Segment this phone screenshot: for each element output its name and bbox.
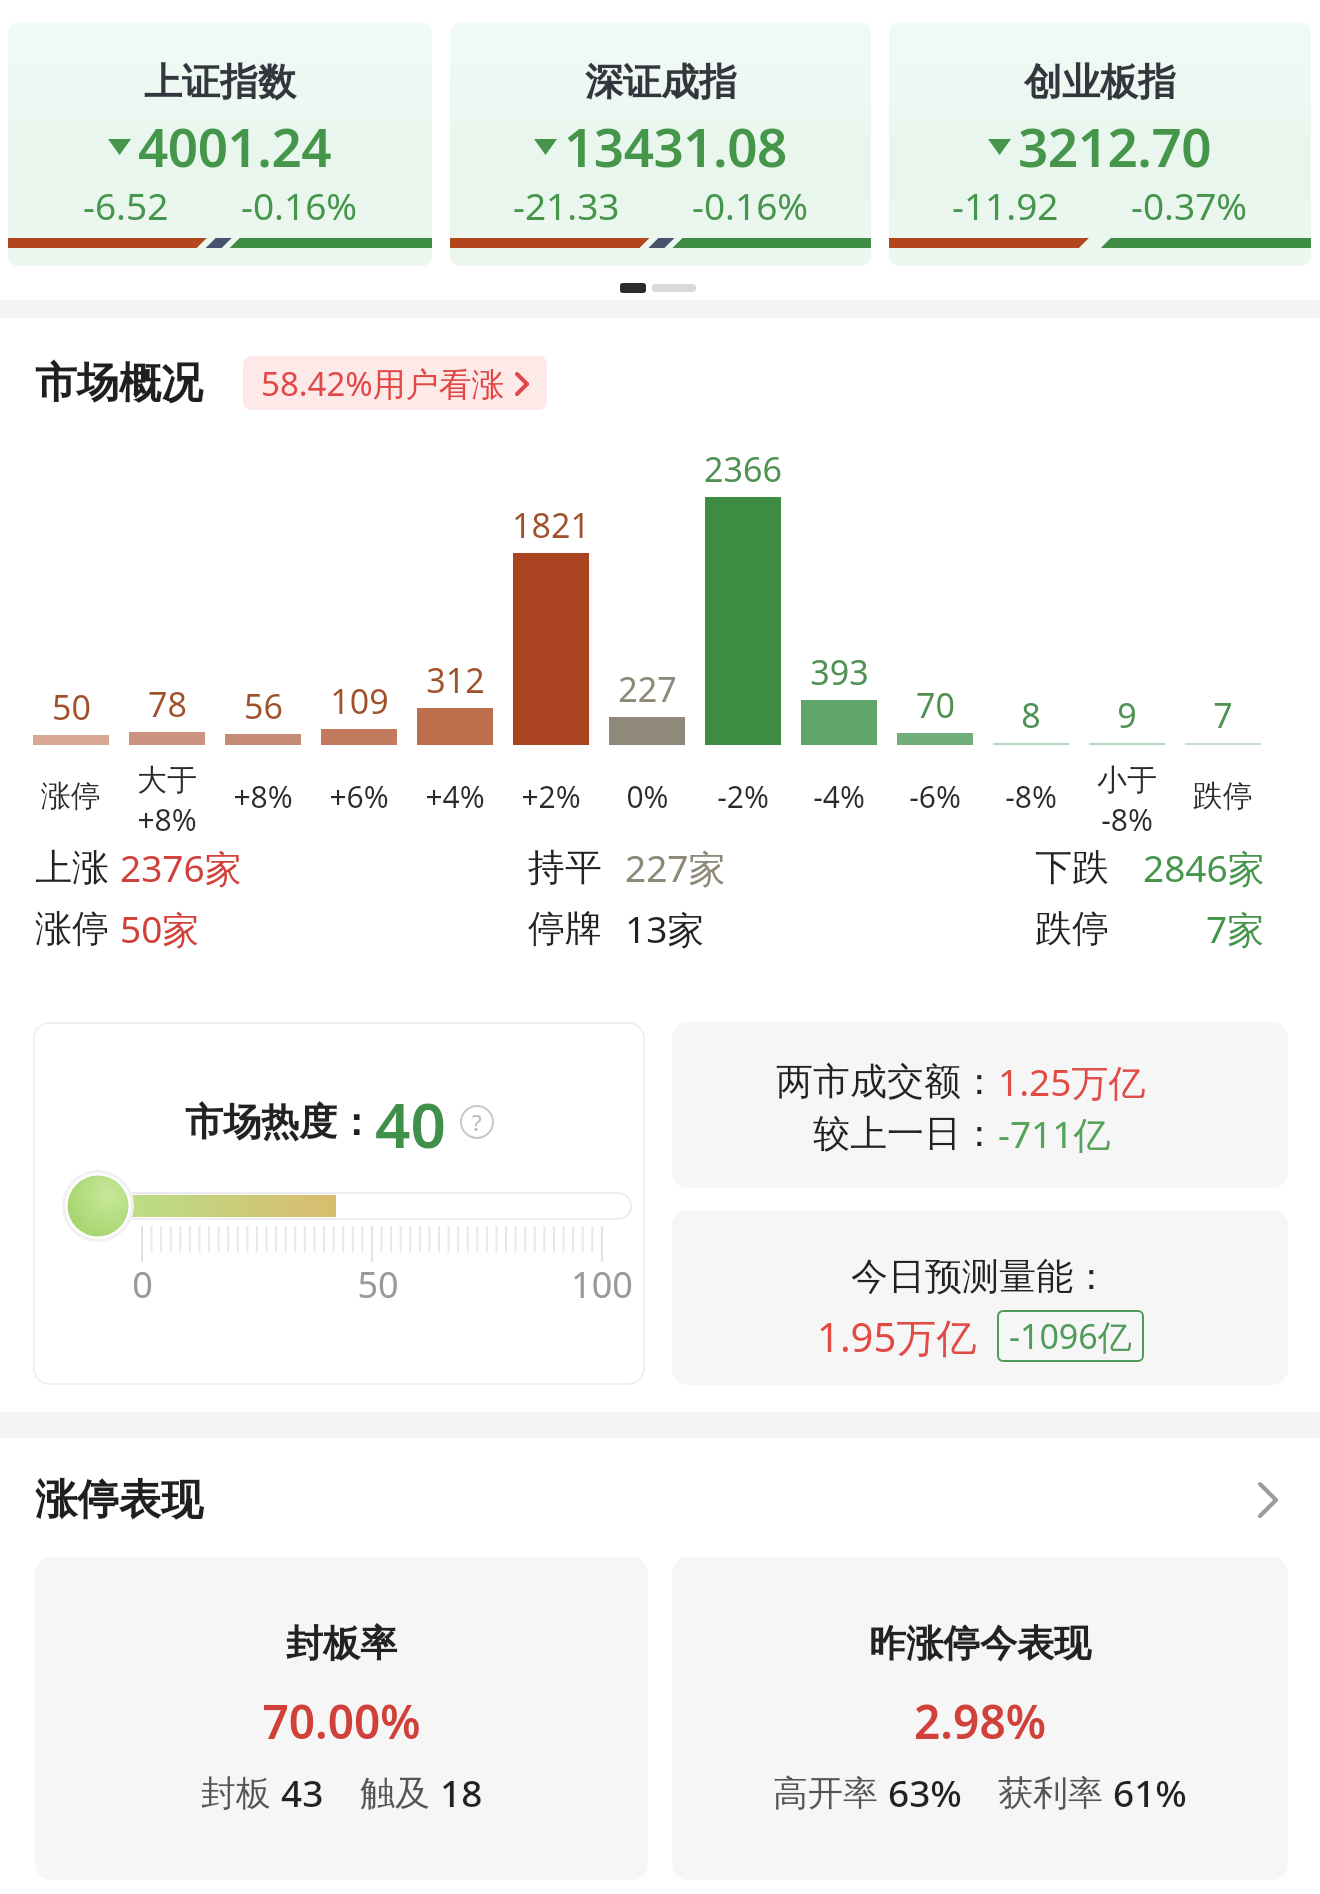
staticText: 创业板指 bbox=[1024, 58, 1176, 106]
staticText: 78 bbox=[148, 681, 187, 727]
staticText: 2846家 bbox=[1143, 842, 1265, 893]
staticText: 13431.08 bbox=[564, 110, 787, 182]
staticText: 18 bbox=[440, 1767, 483, 1817]
staticText: -0.37% bbox=[1131, 180, 1248, 230]
staticText: 触及 bbox=[360, 1768, 440, 1816]
staticText: 3212.70 bbox=[1018, 110, 1212, 182]
staticText: 227 bbox=[618, 666, 677, 712]
staticText: 70.00% bbox=[262, 1690, 421, 1753]
staticText: 停牌 bbox=[528, 905, 602, 952]
staticText: 涨停表现 bbox=[35, 1474, 203, 1527]
staticText: 8 bbox=[1021, 692, 1041, 738]
staticText: 下跌 bbox=[1035, 844, 1109, 891]
staticText: 跌停 bbox=[1035, 905, 1109, 952]
staticText: +8% bbox=[233, 776, 293, 817]
staticText: 小于 -8% bbox=[1097, 761, 1157, 840]
staticText: 100 bbox=[571, 1260, 633, 1309]
staticText: +2% bbox=[521, 776, 581, 817]
staticText: -711亿 bbox=[998, 1108, 1111, 1158]
staticText: 上涨 bbox=[35, 844, 109, 891]
staticText: 获利率 bbox=[998, 1768, 1113, 1816]
staticText: 13家 bbox=[625, 903, 705, 954]
staticText: 1.25万亿 bbox=[998, 1056, 1146, 1106]
staticText: -6.52 bbox=[83, 180, 169, 230]
staticText: 7 bbox=[1213, 692, 1233, 738]
button[interactable]: 今日预测量能： bbox=[672, 1210, 1288, 1385]
staticText: -1096亿 bbox=[1009, 1313, 1132, 1359]
staticText: 2.98% bbox=[914, 1690, 1046, 1753]
staticText: 312 bbox=[426, 657, 485, 703]
staticText: 1.95万亿 bbox=[817, 1309, 977, 1364]
staticText: 涨停 bbox=[41, 777, 101, 815]
button[interactable]: 昨涨停今表现 bbox=[672, 1557, 1288, 1880]
button[interactable]: 封板率 bbox=[35, 1557, 648, 1880]
staticText: 61% bbox=[1113, 1767, 1187, 1817]
staticText: 较上一日： bbox=[813, 1110, 998, 1157]
button[interactable]: 两市成交额： bbox=[672, 1022, 1288, 1188]
staticText: 4001.24 bbox=[138, 110, 332, 182]
staticText: 0% bbox=[626, 776, 669, 817]
button[interactable]: 上证指数 bbox=[8, 22, 432, 266]
staticText: -8% bbox=[1005, 776, 1057, 817]
staticText: 高开率 bbox=[773, 1768, 888, 1816]
staticText: 109 bbox=[330, 678, 389, 724]
staticText: 227家 bbox=[625, 842, 726, 893]
staticText: -11.92 bbox=[952, 180, 1059, 230]
staticText: +6% bbox=[329, 776, 389, 817]
staticText: 深证成指 bbox=[585, 58, 737, 106]
staticText: 393 bbox=[810, 649, 869, 695]
staticText: 2376家 bbox=[120, 842, 242, 893]
staticText: 2366 bbox=[704, 446, 782, 492]
staticText: 40 bbox=[375, 1082, 446, 1162]
staticText: 上证指数 bbox=[144, 58, 296, 106]
staticText: 市场热度： bbox=[185, 1098, 375, 1146]
staticText: 今日预测量能： bbox=[851, 1253, 1110, 1300]
button[interactable]: 市场热度： bbox=[33, 1022, 645, 1385]
staticText: -6% bbox=[909, 776, 961, 817]
staticText: 跌停 bbox=[1193, 777, 1253, 815]
staticText: 43 bbox=[281, 1767, 324, 1817]
button[interactable]: 58.42%用户看涨 bbox=[243, 356, 547, 410]
staticText: +4% bbox=[425, 776, 485, 817]
staticText: 58.42%用户看涨 bbox=[261, 361, 505, 406]
staticText: 两市成交额： bbox=[776, 1058, 998, 1105]
staticText: 市场概况 bbox=[35, 357, 203, 410]
staticText: 持平 bbox=[528, 844, 602, 891]
staticText: -21.33 bbox=[513, 180, 620, 230]
staticText: -2% bbox=[717, 776, 769, 817]
staticText: 7家 bbox=[1206, 903, 1265, 954]
staticText: -0.16% bbox=[692, 180, 809, 230]
staticText: -0.16% bbox=[241, 180, 358, 230]
staticText: 封板 bbox=[201, 1768, 281, 1816]
staticText: 56 bbox=[244, 683, 283, 729]
staticText: 0 bbox=[132, 1260, 153, 1309]
staticText: 大于 +8% bbox=[137, 761, 197, 840]
staticText: ? bbox=[472, 1107, 482, 1137]
staticText: 昨涨停今表现 bbox=[869, 1620, 1091, 1667]
staticText: 50家 bbox=[120, 903, 200, 954]
button[interactable]: 创业板指 bbox=[889, 22, 1311, 266]
staticText: 9 bbox=[1117, 692, 1137, 738]
staticText: 63% bbox=[888, 1767, 962, 1817]
button[interactable]: 深证成指 bbox=[450, 22, 871, 266]
staticText: 70 bbox=[916, 682, 955, 728]
staticText: 封板率 bbox=[286, 1620, 397, 1667]
staticText: 50 bbox=[52, 684, 91, 730]
staticText: 1821 bbox=[512, 502, 590, 548]
staticText: -4% bbox=[813, 776, 865, 817]
staticText: 50 bbox=[357, 1260, 399, 1309]
staticText: 涨停 bbox=[35, 905, 109, 952]
button[interactable] bbox=[1252, 1482, 1284, 1518]
